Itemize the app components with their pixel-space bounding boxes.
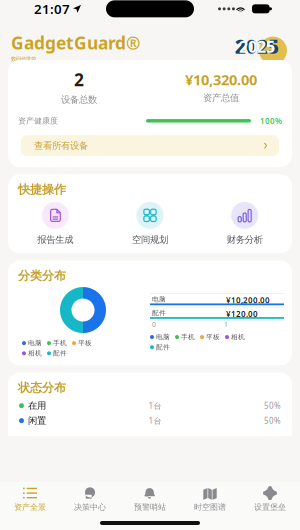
staticText: 财务分析 bbox=[227, 234, 263, 245]
staticText: 21:07 bbox=[34, 0, 70, 18]
staticText: 0 bbox=[152, 320, 156, 329]
staticText: 1台 bbox=[148, 400, 161, 411]
staticText: 50% bbox=[264, 400, 281, 411]
staticText: 2025 bbox=[235, 34, 279, 59]
staticText: 50% bbox=[264, 415, 281, 426]
staticText: 相机 bbox=[231, 333, 245, 341]
staticText: 配件 bbox=[53, 349, 67, 357]
staticText: 1台 bbox=[148, 415, 161, 426]
button[interactable]: 资产全景 bbox=[0, 484, 60, 514]
staticText: 决策中心 bbox=[74, 502, 106, 512]
staticText: 电脑 bbox=[152, 295, 166, 303]
button[interactable]: 财务分析 bbox=[197, 202, 292, 245]
staticText: ¥10,320.00 bbox=[185, 70, 257, 89]
staticText: 2 bbox=[74, 68, 84, 91]
staticText: 电脑 bbox=[156, 333, 170, 341]
staticText: GadgetGuard® bbox=[11, 31, 140, 55]
button[interactable]: 空间规划 bbox=[103, 202, 197, 245]
staticText: ¥10,200.00 bbox=[226, 295, 270, 305]
button[interactable]: 决策中心 bbox=[60, 484, 120, 514]
staticText: 2025 bbox=[239, 36, 275, 57]
button[interactable]: 设置堡垒 bbox=[240, 484, 300, 514]
button[interactable]: 报告生成 bbox=[8, 202, 103, 245]
staticText: 状态分布 bbox=[18, 380, 66, 395]
staticText: 查看所有设备 bbox=[34, 140, 88, 151]
staticText: 设备总数 bbox=[61, 94, 97, 105]
staticText: 手机 bbox=[181, 333, 195, 341]
staticText: 平板 bbox=[206, 333, 220, 341]
button[interactable]: 查看所有设备 bbox=[21, 135, 279, 156]
staticText: 相机 bbox=[28, 349, 42, 357]
staticText: 在用 bbox=[28, 400, 46, 411]
staticText: 配件 bbox=[156, 343, 170, 351]
staticText: 资产总值 bbox=[203, 92, 239, 104]
staticText: 预警哨站 bbox=[134, 502, 166, 512]
button[interactable]: 预警哨站 bbox=[120, 484, 180, 514]
staticText: 1 bbox=[224, 320, 228, 329]
button[interactable]: 时空图谱 bbox=[180, 484, 240, 514]
staticText: 分类分布 bbox=[18, 268, 66, 283]
staticText: 资产全景 bbox=[14, 502, 46, 512]
staticText: ¥120.00 bbox=[226, 308, 258, 319]
staticText: 资产健康度 bbox=[18, 116, 58, 126]
staticText: 平板 bbox=[78, 339, 92, 347]
staticText: 1 bbox=[91, 306, 95, 314]
staticText: 电脑 bbox=[28, 339, 42, 347]
staticText: 时空图谱 bbox=[194, 502, 226, 512]
staticText: 空间规划 bbox=[132, 234, 168, 245]
staticText: 快捷操作 bbox=[18, 182, 66, 197]
staticText: 1 bbox=[70, 306, 74, 314]
staticText: 手机 bbox=[53, 339, 67, 347]
staticText: 数码传世馆 bbox=[11, 56, 36, 62]
staticText: 报告生成 bbox=[37, 234, 73, 245]
staticText: 设置堡垒 bbox=[254, 502, 286, 512]
staticText: 闲置 bbox=[28, 415, 46, 426]
staticText: 配件 bbox=[152, 309, 166, 317]
staticText: 100% bbox=[260, 115, 282, 126]
